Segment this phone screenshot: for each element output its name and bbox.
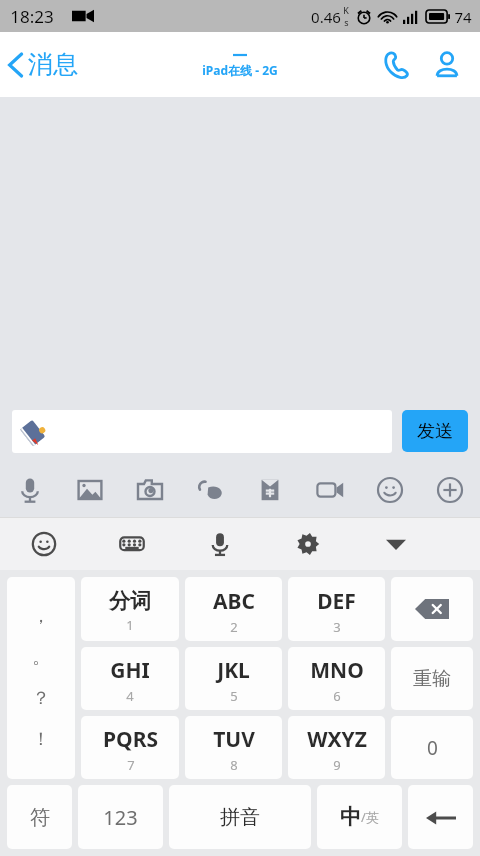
staticText: 4	[126, 687, 134, 705]
button[interactable]: Photo	[60, 462, 120, 517]
staticText: 2	[230, 618, 238, 636]
button[interactable]: ，	[7, 577, 75, 779]
button[interactable]: DEF	[288, 577, 385, 641]
button[interactable]: Keyboard layout	[88, 517, 176, 570]
staticText: MNO	[310, 656, 364, 685]
staticText: 7	[127, 756, 135, 774]
staticText: 5	[230, 687, 238, 705]
staticText: 74	[454, 7, 472, 27]
button[interactable]: Camera	[120, 462, 180, 517]
staticText: 0.46	[311, 7, 341, 27]
button[interactable]: Call	[376, 44, 418, 86]
button[interactable]: WXYZ	[288, 716, 385, 779]
button[interactable]: Enter	[408, 785, 473, 849]
staticText: ！	[32, 728, 50, 751]
staticText: JKL	[217, 656, 250, 685]
staticText: 。	[32, 646, 50, 669]
staticText: 分词	[109, 588, 151, 614]
button[interactable]: Settings	[264, 517, 352, 570]
staticText: 8	[230, 756, 238, 774]
button[interactable]: Voice input	[176, 517, 264, 570]
button[interactable]: 发送	[402, 410, 468, 452]
staticText: iPad在线 - 2G	[202, 62, 278, 78]
button[interactable]: GHI	[81, 647, 179, 710]
button[interactable]: Red packet	[240, 462, 300, 517]
staticText: ，	[32, 605, 50, 628]
button[interactable]: 消息	[0, 43, 88, 86]
staticText: 发送	[417, 420, 453, 443]
button[interactable]: 0	[391, 716, 473, 779]
staticText: DEF	[317, 587, 356, 616]
staticText: 中	[340, 804, 361, 830]
button[interactable]: JKL	[185, 647, 282, 710]
button[interactable]: 123	[78, 785, 163, 849]
staticText: ABC	[213, 587, 255, 616]
staticText: 18:23	[10, 5, 54, 28]
staticText: 符	[30, 805, 50, 830]
staticText: 6	[333, 687, 341, 705]
button[interactable]: GIF	[300, 462, 360, 517]
staticText: 拼音	[220, 805, 260, 830]
button[interactable]: Emoji	[0, 517, 88, 570]
button[interactable]: ABC	[185, 577, 282, 641]
staticText: 0	[427, 735, 438, 761]
staticText: s	[344, 16, 349, 28]
button[interactable]: 中	[317, 785, 402, 849]
button[interactable]: Emoji	[360, 462, 420, 517]
staticText: 英	[366, 809, 379, 825]
staticText: 3	[333, 618, 341, 636]
button[interactable]: Contact profile	[426, 44, 468, 86]
staticText: GHI	[110, 656, 150, 685]
button[interactable]: Voice	[0, 462, 60, 517]
staticText: ？	[32, 687, 50, 710]
button[interactable]	[12, 410, 392, 453]
button[interactable]: More	[420, 462, 480, 517]
staticText: TUV	[213, 725, 255, 754]
button[interactable]: Backspace	[391, 577, 473, 641]
button[interactable]: 符	[7, 785, 72, 849]
button[interactable]: PQRS	[81, 716, 179, 779]
button[interactable]: Hide keyboard	[352, 517, 440, 570]
staticText: WXYZ	[307, 725, 367, 754]
button[interactable]: TUV	[185, 716, 282, 779]
button[interactable]: 重输	[391, 647, 473, 710]
staticText: 消息	[28, 49, 78, 80]
button[interactable]: 拼音	[169, 785, 311, 849]
button[interactable]: Doodle	[180, 462, 240, 517]
staticText: PQRS	[103, 725, 158, 754]
button[interactable]: MNO	[288, 647, 385, 710]
staticText: 123	[103, 804, 138, 831]
staticText: K	[343, 4, 349, 16]
staticText: /	[361, 808, 366, 826]
staticText: 1	[126, 616, 134, 634]
staticText: 重输	[413, 667, 451, 691]
button[interactable]: 分词	[81, 577, 179, 641]
staticText: 9	[333, 756, 341, 774]
